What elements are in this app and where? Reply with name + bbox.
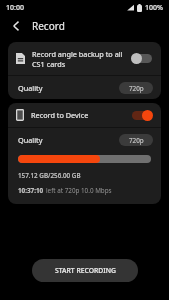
staticText: 10:00 [6, 3, 24, 13]
button[interactable]: Back [7, 17, 24, 34]
button[interactable]: Switch on [131, 109, 153, 122]
staticText: 10:37:10 [18, 186, 44, 195]
button[interactable]: Record angle backup to all CS1 cards [8, 42, 161, 75]
button[interactable]: Quality [8, 128, 161, 151]
staticText: Record angle backup to all CS1 cards [32, 49, 127, 69]
staticText: START RECORDING [55, 266, 116, 275]
button[interactable]: Switch off [131, 52, 153, 65]
staticText: Quality [18, 83, 43, 93]
button[interactable]: START RECORDING [32, 259, 138, 282]
staticText: 720p [129, 84, 144, 93]
button[interactable]: Record to Device [8, 103, 161, 127]
staticText: Record to Device [31, 110, 89, 120]
staticText: left at 720p 10.0 Mbps [46, 186, 112, 195]
staticText: Quality [18, 135, 43, 145]
button[interactable]: Quality [8, 76, 161, 99]
staticText: 157.12 GB/256.00 GB [18, 171, 81, 180]
staticText: 100% [145, 3, 163, 13]
staticText: 720p [129, 136, 144, 145]
staticText: Record [32, 19, 65, 33]
